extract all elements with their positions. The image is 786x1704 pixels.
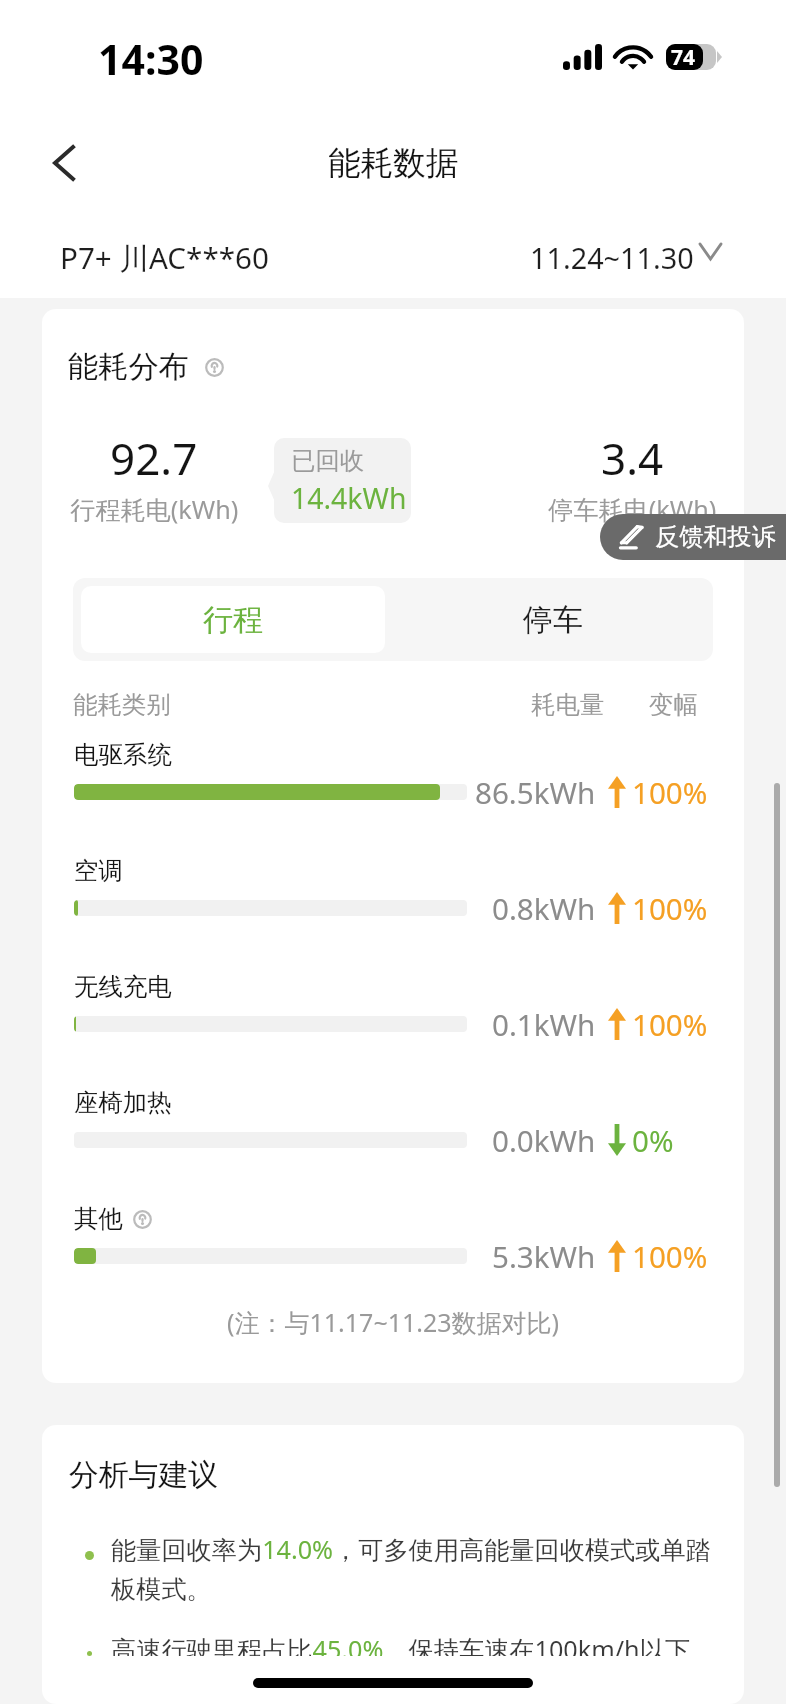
staticText: 分析与建议: [69, 1456, 218, 1494]
staticText: 行程耗电(kWh): [70, 492, 239, 526]
staticText: 能耗类别: [73, 690, 171, 721]
staticText: P7+ 川AC***60: [60, 237, 269, 277]
staticText: (注：与11.17~11.23数据对比): [227, 1305, 560, 1339]
staticText: 能耗分布: [68, 348, 189, 386]
staticText: 停车耗电(kWh): [548, 492, 717, 526]
staticText: 100%: [632, 1004, 708, 1044]
staticText: 能量回收率为14.0%，可多使用高能量回收模式或单踏板模式。: [111, 1532, 725, 1606]
staticText: 耗电量: [531, 690, 605, 721]
staticText: 14:30: [98, 31, 204, 87]
staticText: 空调: [74, 856, 123, 887]
button[interactable]: Back: [20, 119, 108, 207]
staticText: 5.3kWh: [492, 1236, 596, 1276]
button[interactable]: 停车: [393, 578, 713, 661]
staticText: 74: [671, 43, 696, 69]
staticText: 100%: [632, 1236, 708, 1276]
staticText: 0.1kWh: [492, 1004, 596, 1044]
button[interactable]: 11.24~11.30: [530, 238, 721, 277]
staticText: 停车: [523, 601, 583, 639]
staticText: 14.4kWh: [291, 479, 407, 518]
staticText: 高速行驶里程占比45.0%，保持车速在100km/h以下，可降低风阻，减少能耗: [111, 1632, 725, 1656]
staticText: 无线充电: [74, 972, 172, 1003]
staticText: 座椅加热: [74, 1088, 172, 1119]
staticText: 0%: [632, 1120, 674, 1160]
staticText: 11.24~11.30: [530, 238, 694, 277]
button[interactable]: 行程: [81, 586, 385, 653]
button[interactable]: 反馈和投诉: [600, 514, 786, 560]
staticText: 电驱系统: [74, 740, 172, 771]
staticText: 变幅: [649, 690, 698, 721]
staticText: 反馈和投诉: [655, 522, 776, 552]
staticText: 已回收: [291, 446, 365, 477]
staticText: 0.0kWh: [492, 1120, 596, 1160]
staticText: 3.4: [601, 428, 664, 488]
staticText: 能耗数据: [328, 143, 459, 184]
staticText: 100%: [632, 888, 708, 928]
staticText: 92.7: [110, 428, 198, 488]
staticText: 行程: [203, 601, 263, 639]
staticText: 86.5kWh: [475, 772, 596, 812]
staticText: 100%: [632, 772, 708, 812]
staticText: 其他: [74, 1204, 123, 1235]
staticText: 0.8kWh: [492, 888, 596, 928]
